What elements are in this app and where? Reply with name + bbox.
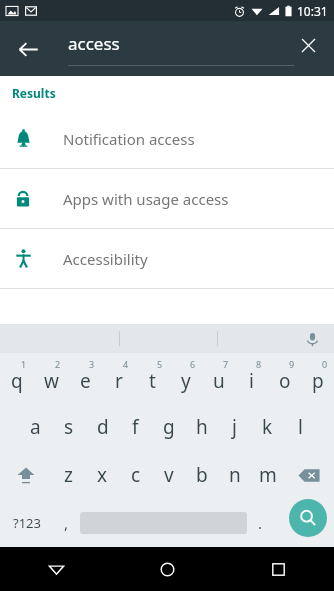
staticText: . bbox=[258, 513, 263, 533]
staticText: a bbox=[30, 414, 41, 440]
button[interactable]: f bbox=[119, 403, 152, 451]
staticText: Results bbox=[12, 85, 56, 101]
button[interactable]: l bbox=[284, 403, 317, 451]
button[interactable]: c bbox=[119, 451, 152, 499]
button[interactable]: 3 bbox=[68, 353, 102, 403]
button[interactable]: Voice input bbox=[298, 325, 326, 353]
button[interactable]: j bbox=[218, 403, 251, 451]
button[interactable]: m bbox=[251, 451, 284, 499]
staticText: o bbox=[279, 368, 291, 394]
button[interactable]: b bbox=[185, 451, 218, 499]
button[interactable]: n bbox=[218, 451, 251, 499]
staticText: 1 bbox=[21, 358, 27, 370]
staticText: h bbox=[196, 414, 208, 440]
staticText: y bbox=[181, 368, 191, 394]
button[interactable]: 4 bbox=[102, 353, 136, 403]
button[interactable]: 2 bbox=[34, 353, 68, 403]
staticText: 4 bbox=[123, 358, 129, 370]
staticText: e bbox=[80, 368, 91, 394]
button[interactable]: , bbox=[53, 499, 80, 547]
button[interactable]: Backspace bbox=[284, 451, 334, 499]
staticText: u bbox=[213, 368, 225, 394]
button[interactable]: . bbox=[247, 499, 274, 547]
staticText: g bbox=[163, 414, 175, 440]
staticText: 0 bbox=[322, 358, 328, 370]
staticText: j bbox=[232, 414, 237, 440]
button[interactable]: s bbox=[52, 403, 86, 451]
button[interactable]: 9 bbox=[268, 353, 301, 403]
staticText: 6 bbox=[190, 358, 196, 370]
staticText: 7 bbox=[223, 358, 229, 370]
staticText: x bbox=[97, 462, 108, 488]
staticText: Accessibility bbox=[63, 249, 148, 269]
staticText: b bbox=[196, 462, 208, 488]
button[interactable]: Recent apps bbox=[223, 547, 334, 591]
staticText: q bbox=[11, 368, 23, 394]
button[interactable]: g bbox=[152, 403, 185, 451]
staticText: v bbox=[164, 462, 174, 488]
staticText: 9 bbox=[289, 358, 295, 370]
staticText: n bbox=[229, 462, 241, 488]
staticText: p bbox=[312, 368, 324, 394]
button[interactable]: a bbox=[18, 403, 52, 451]
staticText: t bbox=[149, 368, 156, 394]
staticText: 5 bbox=[157, 358, 163, 370]
staticText: c bbox=[131, 462, 141, 488]
button[interactable]: 0 bbox=[301, 353, 334, 403]
button[interactable]: 1 bbox=[0, 353, 34, 403]
staticText: z bbox=[64, 462, 73, 488]
button[interactable]: z bbox=[51, 451, 85, 499]
button[interactable]: h bbox=[185, 403, 218, 451]
button[interactable]: v bbox=[152, 451, 185, 499]
staticText: 8 bbox=[256, 358, 262, 370]
button[interactable]: Back bbox=[4, 25, 52, 73]
staticText: w bbox=[44, 368, 59, 394]
button[interactable]: k bbox=[251, 403, 284, 451]
button[interactable]: Back bbox=[0, 547, 112, 591]
staticText: Notification access bbox=[63, 129, 195, 149]
staticText: s bbox=[64, 414, 74, 440]
staticText: k bbox=[262, 414, 273, 440]
button[interactable]: 7 bbox=[202, 353, 235, 403]
staticText: f bbox=[132, 414, 139, 440]
button[interactable]: Apps with usage access bbox=[0, 169, 334, 228]
staticText: access bbox=[68, 32, 120, 55]
button[interactable]: Search bbox=[289, 499, 327, 537]
button[interactable]: 5 bbox=[136, 353, 169, 403]
staticText: Apps with usage access bbox=[63, 189, 229, 209]
button[interactable]: Notification access bbox=[0, 109, 334, 168]
staticText: 10:31 bbox=[297, 3, 328, 19]
button[interactable]: 6 bbox=[169, 353, 202, 403]
staticText: ?123 bbox=[13, 514, 41, 532]
button[interactable]: Shift bbox=[0, 451, 51, 499]
button[interactable]: Clear search bbox=[286, 23, 330, 67]
staticText: 2 bbox=[55, 358, 61, 370]
staticText: d bbox=[97, 414, 109, 440]
button[interactable]: Accessibility bbox=[0, 229, 334, 288]
button[interactable]: d bbox=[86, 403, 119, 451]
button[interactable]: Home bbox=[112, 547, 223, 591]
staticText: , bbox=[64, 513, 69, 533]
button[interactable]: x bbox=[85, 451, 119, 499]
button[interactable]: ?123 bbox=[0, 499, 53, 547]
staticText: i bbox=[249, 368, 254, 394]
staticText: r bbox=[115, 368, 123, 394]
staticText: l bbox=[298, 414, 303, 440]
staticText: 3 bbox=[89, 358, 95, 370]
staticText: m bbox=[259, 462, 277, 488]
button[interactable]: 8 bbox=[235, 353, 268, 403]
